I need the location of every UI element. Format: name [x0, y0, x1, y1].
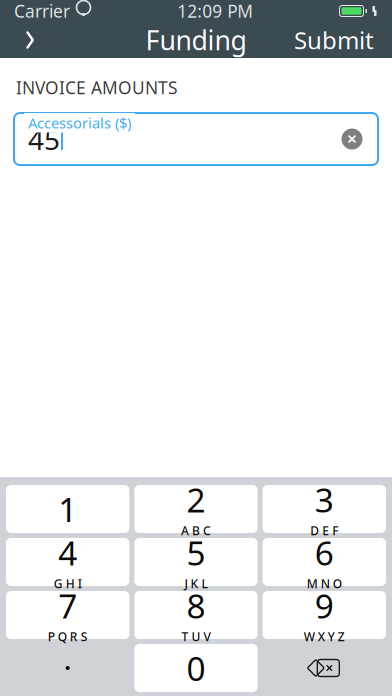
staticText: M N O — [307, 576, 342, 592]
staticText: T U V — [181, 629, 210, 645]
staticText: 4 — [58, 530, 77, 575]
button[interactable]: 2 — [134, 485, 258, 533]
button[interactable]: 5 — [134, 538, 258, 586]
staticText: G H I — [54, 576, 82, 592]
staticText: Accessorials ($) — [28, 113, 131, 132]
button[interactable]: 3 — [263, 485, 386, 533]
staticText: 3 — [315, 477, 334, 522]
staticText: 9 — [315, 583, 334, 628]
staticText: 6 — [315, 530, 334, 575]
button[interactable]: 1 — [6, 485, 129, 533]
button[interactable]: Delete — [263, 644, 386, 692]
staticText: D E F — [310, 523, 338, 539]
staticText: 0 — [186, 646, 205, 690]
button[interactable]: Decimal point — [6, 644, 129, 692]
staticText: W X Y Z — [304, 629, 345, 645]
staticText: 5 — [186, 530, 205, 575]
staticText: 1 — [58, 487, 77, 531]
button[interactable]: Submit — [284, 22, 384, 58]
button[interactable]: 4 — [6, 538, 129, 586]
staticText: 8 — [186, 583, 205, 628]
staticText: Submit — [294, 24, 374, 56]
staticText: P Q R S — [48, 629, 88, 645]
staticText: 45 — [28, 120, 60, 158]
button[interactable]: 7 — [6, 591, 129, 639]
button[interactable]: 9 — [263, 591, 386, 639]
staticText: Funding — [145, 22, 246, 58]
staticText: J K L — [184, 576, 207, 592]
button[interactable]: Back — [8, 22, 52, 58]
staticText: 12:09 PM — [177, 0, 253, 22]
staticText: Carrier — [14, 0, 70, 22]
staticText: A B C — [181, 523, 211, 539]
staticText: INVOICE AMOUNTS — [16, 76, 178, 99]
staticText: 7 — [58, 583, 77, 628]
button[interactable]: 8 — [134, 591, 258, 639]
button[interactable]: Clear text — [340, 127, 364, 151]
button[interactable]: 0 — [134, 644, 258, 692]
staticText: 2 — [186, 477, 205, 522]
button[interactable]: 6 — [263, 538, 386, 586]
